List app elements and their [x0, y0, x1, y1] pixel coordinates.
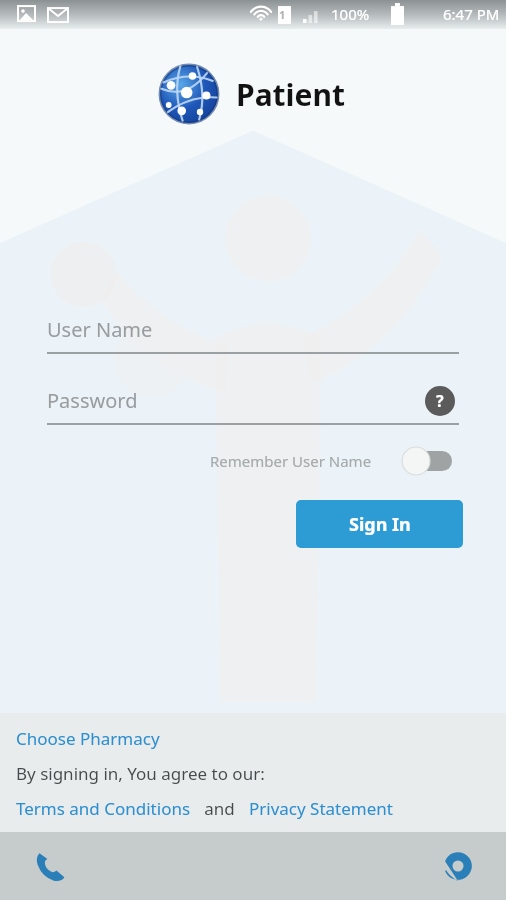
button[interactable]: Find location: [432, 840, 484, 892]
staticText: and: [191, 797, 249, 820]
staticText: Privacy Statement: [249, 797, 393, 820]
button[interactable]: Help: [425, 386, 455, 416]
button[interactable]: Terms and Conditions: [16, 797, 191, 820]
button[interactable]: User Name: [47, 307, 459, 352]
staticText: User Name: [47, 316, 153, 343]
staticText: Patient: [236, 74, 346, 115]
button[interactable]: Password: [47, 378, 459, 423]
staticText: 100%: [331, 4, 370, 24]
staticText: 6:47 PM: [443, 4, 500, 24]
button[interactable]: Remember User Name: [210, 447, 452, 475]
button[interactable]: Privacy Statement: [249, 797, 393, 820]
staticText: Choose Pharmacy: [16, 727, 160, 750]
staticText: Terms and Conditions: [16, 797, 191, 820]
staticText: Remember User Name: [210, 451, 372, 471]
button[interactable]: Call: [24, 840, 76, 892]
staticText: Sign In: [349, 512, 411, 537]
button[interactable]: Choose Pharmacy: [16, 727, 160, 750]
staticText: ?: [436, 390, 444, 412]
staticText: By signing in, You agree to our:: [16, 762, 265, 785]
button[interactable]: Sign In: [296, 500, 463, 548]
staticText: Password: [47, 387, 138, 414]
staticText: 1: [279, 7, 286, 22]
